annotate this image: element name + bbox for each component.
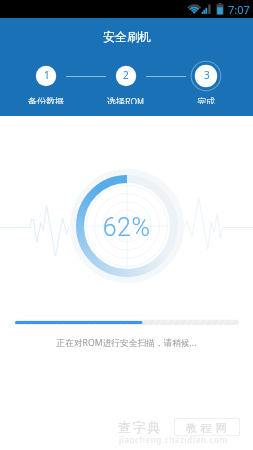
button[interactable]: 2 [94,64,158,104]
staticText: 教 程 网 [186,420,228,435]
staticText: 3 [204,68,210,82]
button[interactable]: 3 [174,64,238,104]
staticText: jiaocheng.chazidian.com [119,434,228,445]
staticText: 1 [44,68,50,82]
staticText: 选择ROM [107,95,145,104]
staticText: 完成 [197,95,216,104]
staticText: 正在对ROM进行安全扫描，请稍候... [0,337,253,349]
staticText: 7:07 [228,2,250,17]
button[interactable]: 1 [14,64,78,104]
staticText: 查字典 [118,419,162,435]
staticText: 备份数据 [28,95,65,104]
staticText: 2 [123,68,129,82]
staticText: 安全刷机 [103,29,151,44]
staticText: 62% [0,213,253,242]
